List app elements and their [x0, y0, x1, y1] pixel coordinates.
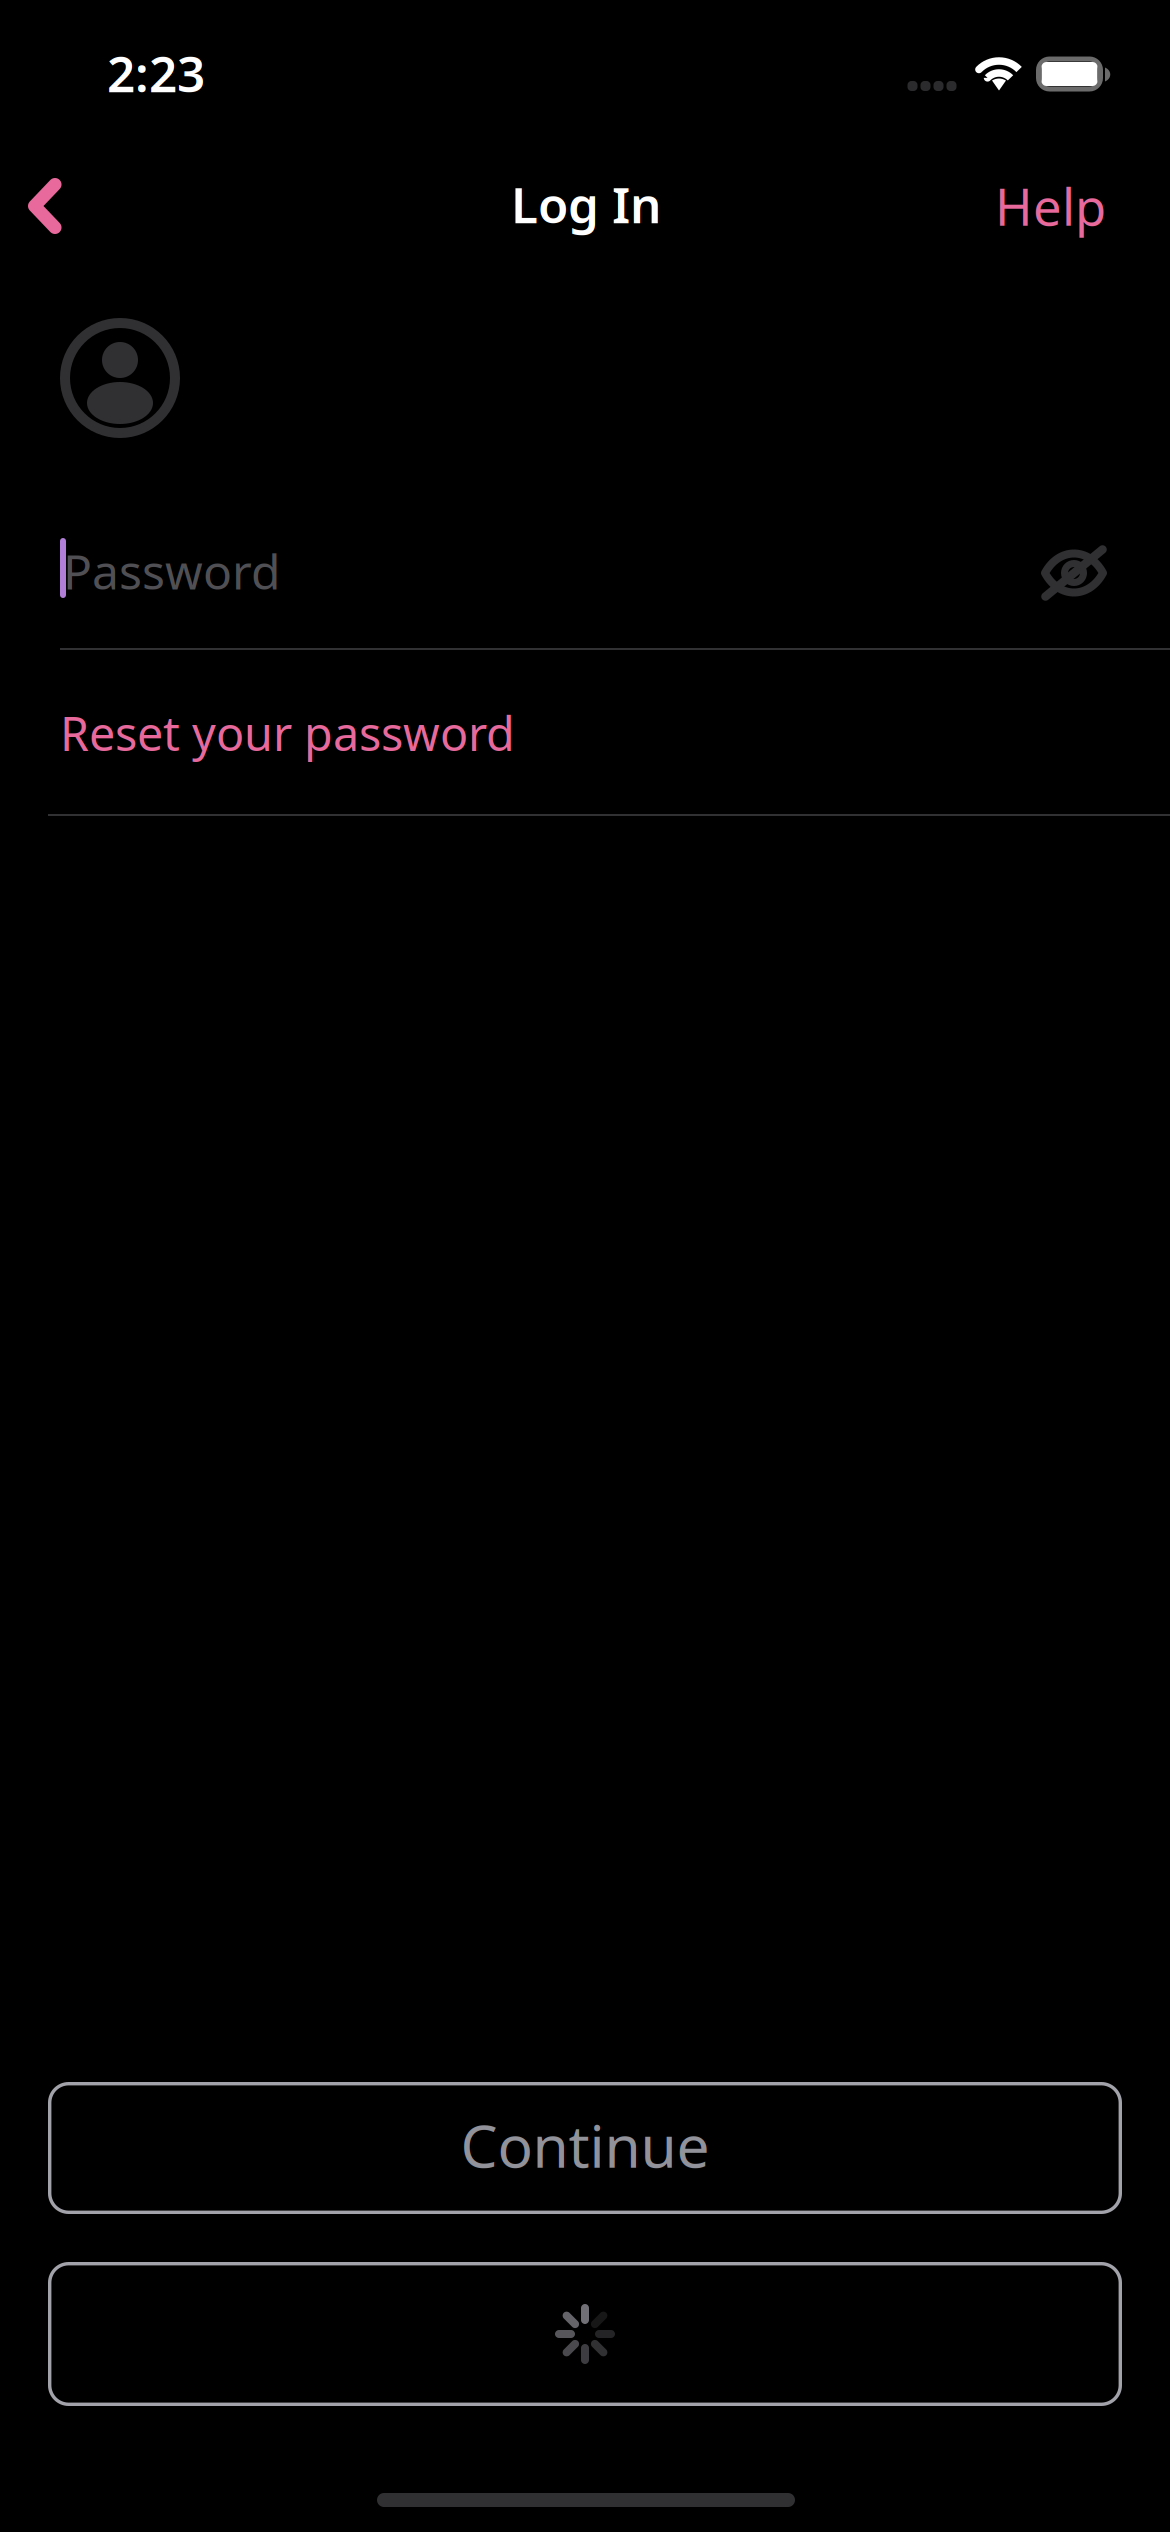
button[interactable]: Reset your password	[60, 650, 1170, 816]
staticText: Reset your password	[60, 702, 515, 764]
staticText: Password	[63, 539, 281, 603]
staticText: Help	[995, 172, 1106, 240]
staticText: Continue	[460, 2106, 709, 2184]
button[interactable]: Loading	[48, 2262, 1122, 2406]
staticText: Log In	[511, 171, 661, 237]
button[interactable]: Continue	[48, 2082, 1122, 2214]
button[interactable]: Help	[916, 151, 1106, 261]
button[interactable]: Back	[28, 151, 128, 261]
button[interactable]: Show password	[1009, 517, 1139, 629]
staticText: 2:23	[107, 40, 205, 106]
